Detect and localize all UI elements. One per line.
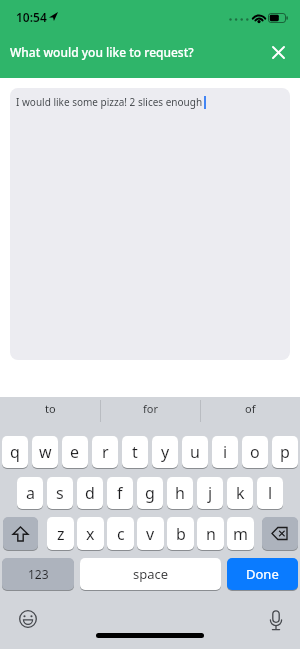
staticText: space bbox=[133, 565, 169, 583]
button[interactable]: x bbox=[77, 517, 104, 550]
staticText: e bbox=[70, 441, 80, 463]
staticText: l bbox=[268, 482, 273, 504]
staticText: x bbox=[86, 523, 95, 545]
button[interactable]: m bbox=[227, 517, 254, 550]
button[interactable]: k bbox=[227, 477, 253, 509]
button[interactable] bbox=[17, 608, 38, 629]
staticText: a bbox=[26, 482, 35, 504]
button[interactable]: y bbox=[152, 436, 178, 468]
staticText: u bbox=[190, 441, 200, 463]
button[interactable]: Done bbox=[227, 558, 298, 590]
staticText: Done bbox=[246, 565, 279, 583]
button[interactable]: z bbox=[47, 517, 74, 550]
staticText: b bbox=[176, 523, 186, 545]
button[interactable]: 123 bbox=[2, 558, 74, 590]
button[interactable] bbox=[266, 608, 286, 634]
staticText: z bbox=[57, 523, 65, 545]
staticText: f bbox=[117, 482, 123, 504]
button[interactable]: q bbox=[2, 436, 28, 468]
staticText: s bbox=[56, 482, 64, 504]
staticText: What would you like to request? bbox=[10, 44, 194, 60]
button[interactable]: to bbox=[0, 397, 100, 419]
staticText: h bbox=[175, 482, 185, 504]
button[interactable]: w bbox=[32, 436, 58, 468]
staticText: k bbox=[236, 482, 245, 504]
button[interactable]: c bbox=[107, 517, 134, 550]
button[interactable]: I would like some pizza! 2 slices enough bbox=[10, 88, 290, 360]
staticText: i bbox=[223, 441, 228, 463]
staticText: c bbox=[117, 523, 125, 545]
staticText: of bbox=[245, 401, 256, 416]
staticText: q bbox=[10, 441, 20, 463]
staticText: m bbox=[233, 523, 248, 545]
button[interactable]: a bbox=[17, 477, 43, 509]
staticText: d bbox=[85, 482, 95, 504]
staticText: I would like some pizza! 2 slices enough bbox=[16, 95, 203, 109]
button[interactable]: h bbox=[167, 477, 193, 509]
staticText: p bbox=[280, 441, 290, 463]
button[interactable]: v bbox=[137, 517, 164, 550]
button[interactable]: space bbox=[80, 558, 221, 590]
button[interactable]: e bbox=[62, 436, 88, 468]
button[interactable] bbox=[262, 517, 298, 550]
staticText: y bbox=[161, 441, 170, 463]
button[interactable] bbox=[267, 41, 289, 63]
button[interactable]: s bbox=[47, 477, 73, 509]
button[interactable]: of bbox=[200, 397, 300, 419]
staticText: 123 bbox=[28, 566, 49, 582]
staticText: w bbox=[39, 441, 52, 463]
button[interactable]: l bbox=[257, 477, 283, 509]
staticText: to bbox=[45, 401, 56, 416]
button[interactable]: f bbox=[107, 477, 133, 509]
button[interactable]: for bbox=[100, 397, 200, 419]
staticText: for bbox=[143, 401, 158, 416]
button[interactable]: n bbox=[197, 517, 224, 550]
button[interactable]: p bbox=[272, 436, 298, 468]
button[interactable]: g bbox=[137, 477, 163, 509]
staticText: n bbox=[206, 523, 216, 545]
button[interactable]: r bbox=[92, 436, 118, 468]
staticText: g bbox=[145, 482, 155, 504]
staticText: j bbox=[208, 482, 213, 504]
button[interactable]: o bbox=[242, 436, 268, 468]
button[interactable]: j bbox=[197, 477, 223, 509]
button[interactable] bbox=[3, 517, 38, 550]
button[interactable]: b bbox=[167, 517, 194, 550]
button[interactable]: t bbox=[122, 436, 148, 468]
staticText: 10:54 bbox=[16, 9, 47, 25]
button[interactable]: u bbox=[182, 436, 208, 468]
staticText: v bbox=[146, 523, 155, 545]
staticText: o bbox=[250, 441, 260, 463]
staticText: t bbox=[132, 441, 138, 463]
button[interactable]: i bbox=[212, 436, 238, 468]
staticText: r bbox=[102, 441, 109, 463]
button[interactable]: d bbox=[77, 477, 103, 509]
